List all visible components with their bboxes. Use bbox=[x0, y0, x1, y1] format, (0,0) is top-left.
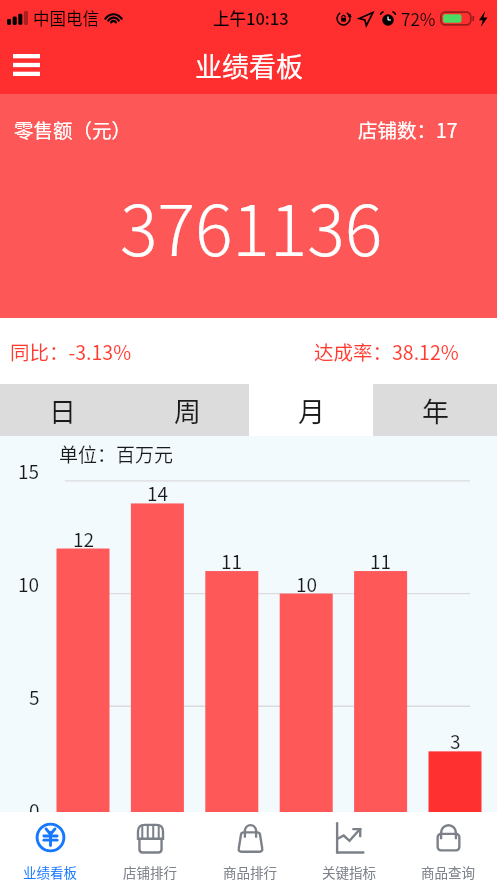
staticText: 上午10:13 bbox=[213, 6, 289, 30]
staticText: 店铺数：17 bbox=[358, 115, 458, 143]
staticText: 零售额（元） bbox=[14, 115, 132, 143]
button[interactable]: 商品排行 bbox=[200, 812, 299, 883]
button[interactable]: 年 bbox=[373, 384, 497, 436]
staticText: 5 bbox=[29, 683, 40, 709]
staticText: 0 bbox=[29, 796, 40, 822]
staticText: 10 bbox=[18, 570, 40, 596]
staticText: 72% bbox=[401, 6, 436, 31]
button[interactable]: 店铺排行 bbox=[100, 812, 200, 883]
button[interactable]: 月 bbox=[249, 384, 373, 436]
button[interactable]: 业绩看板 bbox=[0, 812, 100, 883]
staticText: 3 bbox=[450, 727, 461, 753]
staticText: 商品查询 bbox=[421, 862, 475, 882]
staticText: 商品排行 bbox=[223, 862, 277, 882]
button[interactable]: 日 bbox=[0, 384, 125, 436]
button[interactable]: 关键指标 bbox=[299, 812, 398, 883]
staticText: 同比：-3.13% bbox=[10, 337, 132, 365]
staticText: 业绩看板 bbox=[23, 862, 77, 882]
staticText: 14 bbox=[147, 479, 169, 505]
staticText: 11 bbox=[370, 547, 392, 573]
button[interactable]: Menu bbox=[13, 52, 43, 78]
staticText: 年 bbox=[422, 391, 449, 430]
staticText: 周 bbox=[174, 391, 201, 430]
staticText: 3761136 bbox=[120, 175, 383, 276]
staticText: 11 bbox=[221, 547, 243, 573]
button[interactable]: 周 bbox=[125, 384, 249, 436]
staticText: 15 bbox=[18, 457, 40, 483]
staticText: 月 bbox=[298, 391, 325, 430]
staticText: 店铺排行 bbox=[123, 862, 177, 882]
staticText: 日 bbox=[49, 391, 76, 430]
staticText: 达成率：38.12% bbox=[314, 337, 459, 365]
staticText: 12 bbox=[73, 525, 95, 551]
staticText: 单位：百万元 bbox=[59, 440, 174, 466]
button[interactable]: 商品查询 bbox=[398, 812, 497, 883]
staticText: 中国电信 bbox=[33, 6, 99, 30]
staticText: 关键指标 bbox=[322, 862, 376, 882]
staticText: 业绩看板 bbox=[195, 46, 303, 85]
staticText: 10 bbox=[296, 570, 318, 596]
